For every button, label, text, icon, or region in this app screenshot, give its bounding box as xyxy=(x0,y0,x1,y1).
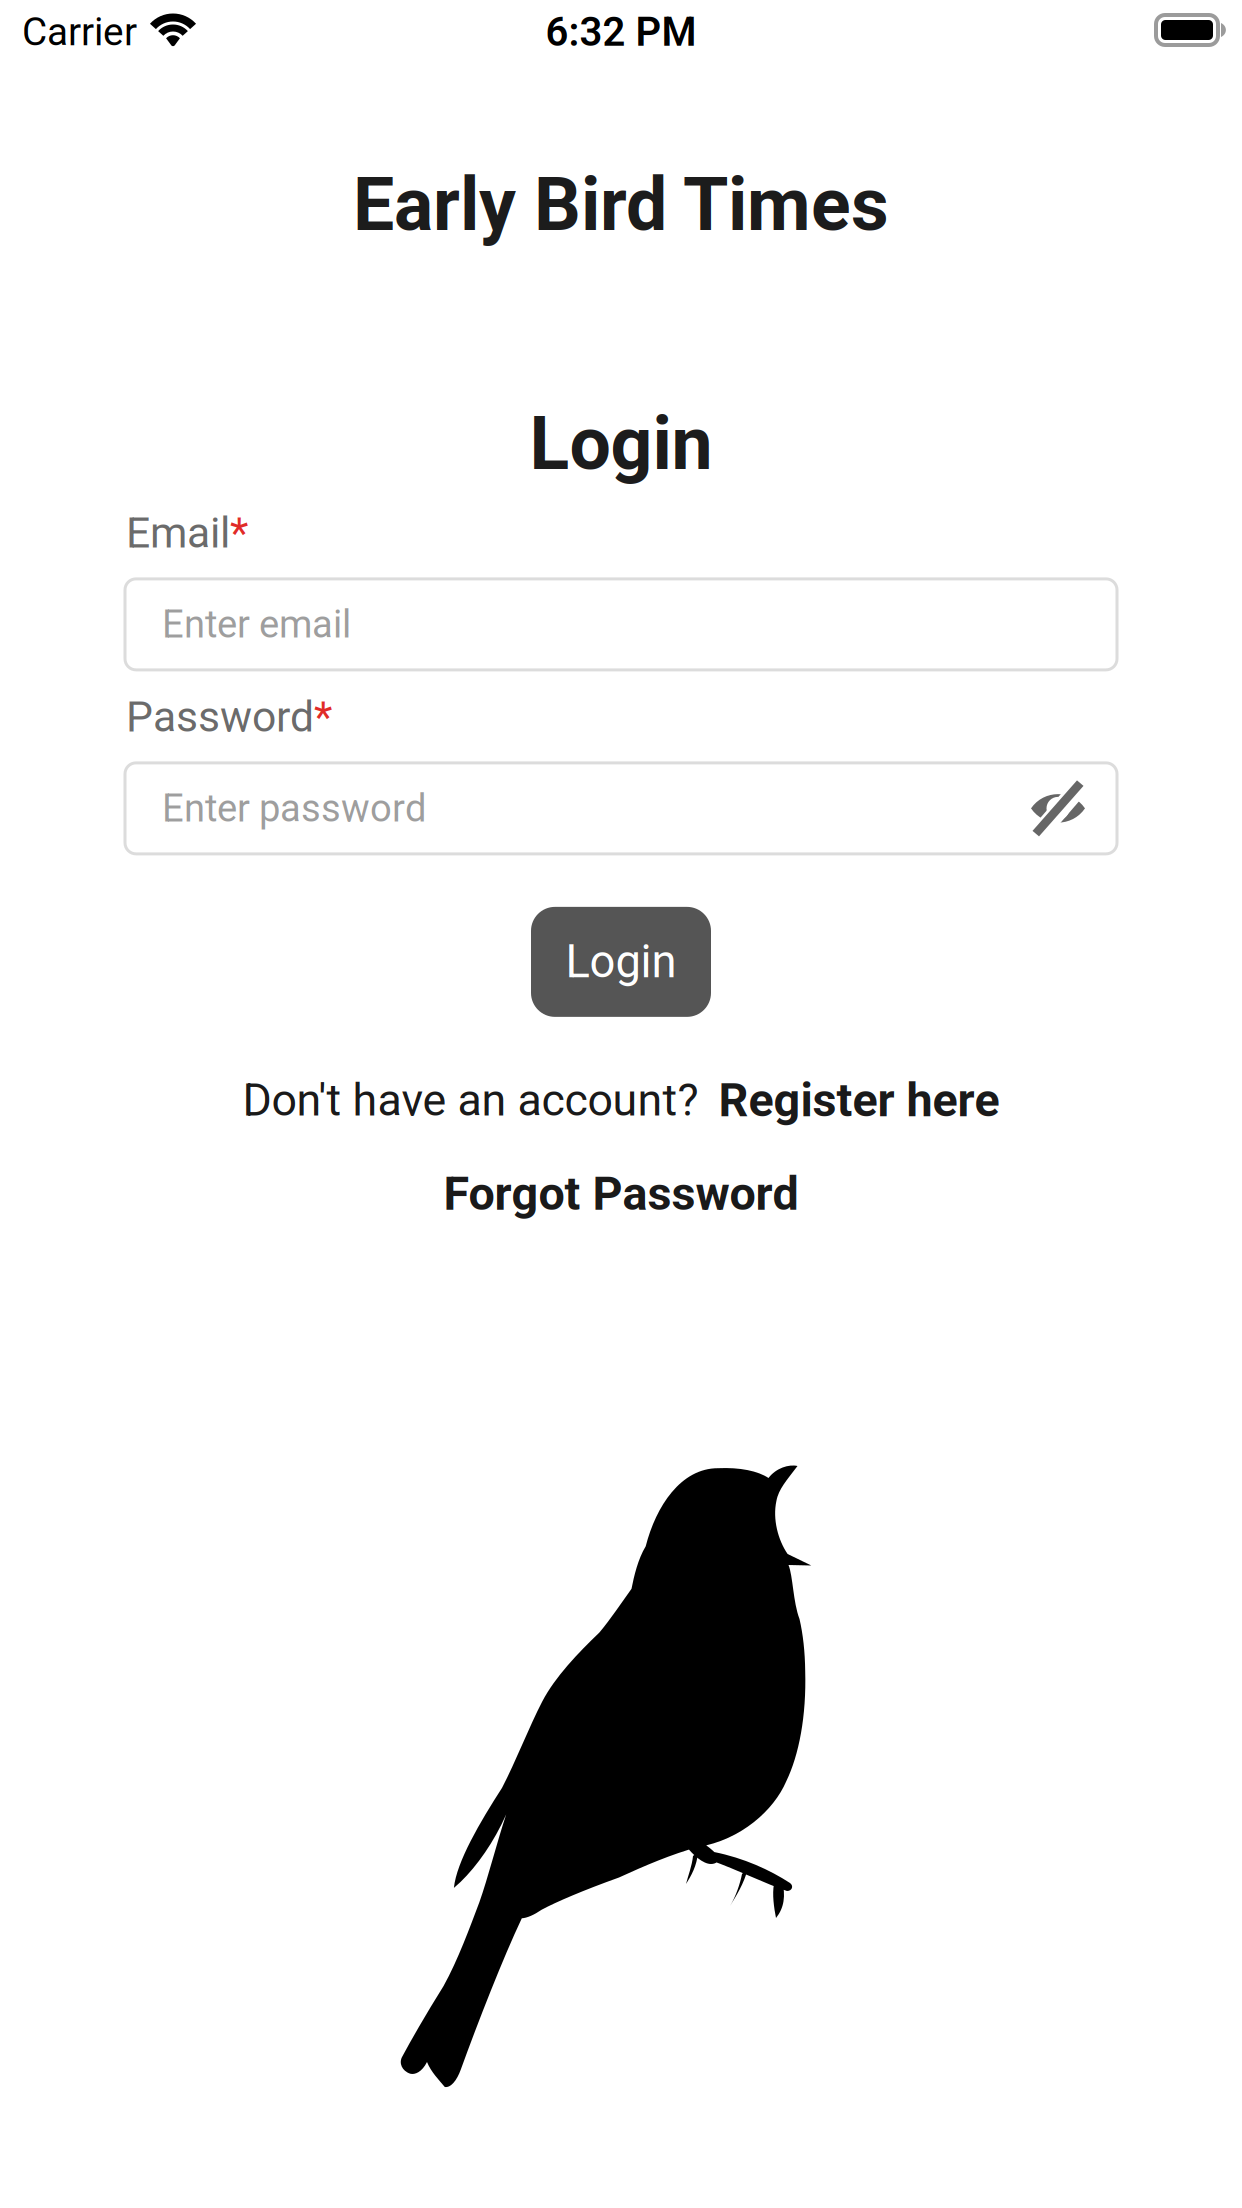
staticText: Login xyxy=(529,401,712,487)
staticText: Password xyxy=(126,692,314,742)
button[interactable]: Register here xyxy=(718,1073,999,1128)
staticText: Enter email xyxy=(162,602,351,647)
staticText: Email xyxy=(126,508,230,558)
button[interactable]: Forgot Password xyxy=(443,1167,798,1221)
button[interactable]: Login xyxy=(531,907,711,1017)
staticText: Forgot Password xyxy=(443,1167,798,1221)
button[interactable]: Show password xyxy=(1023,773,1093,843)
staticText: Don't have an account? xyxy=(242,1074,698,1126)
staticText: * xyxy=(230,508,248,558)
staticText: Enter password xyxy=(162,786,427,831)
staticText: Register here xyxy=(718,1073,999,1128)
staticText: Carrier xyxy=(22,9,137,55)
staticText: Early Bird Times xyxy=(353,162,889,248)
staticText: * xyxy=(314,692,332,742)
staticText: Login xyxy=(565,935,676,988)
button[interactable]: Enter email xyxy=(125,579,1117,670)
staticText: 6:32 PM xyxy=(545,9,696,55)
button[interactable]: Enter password xyxy=(125,763,1117,854)
